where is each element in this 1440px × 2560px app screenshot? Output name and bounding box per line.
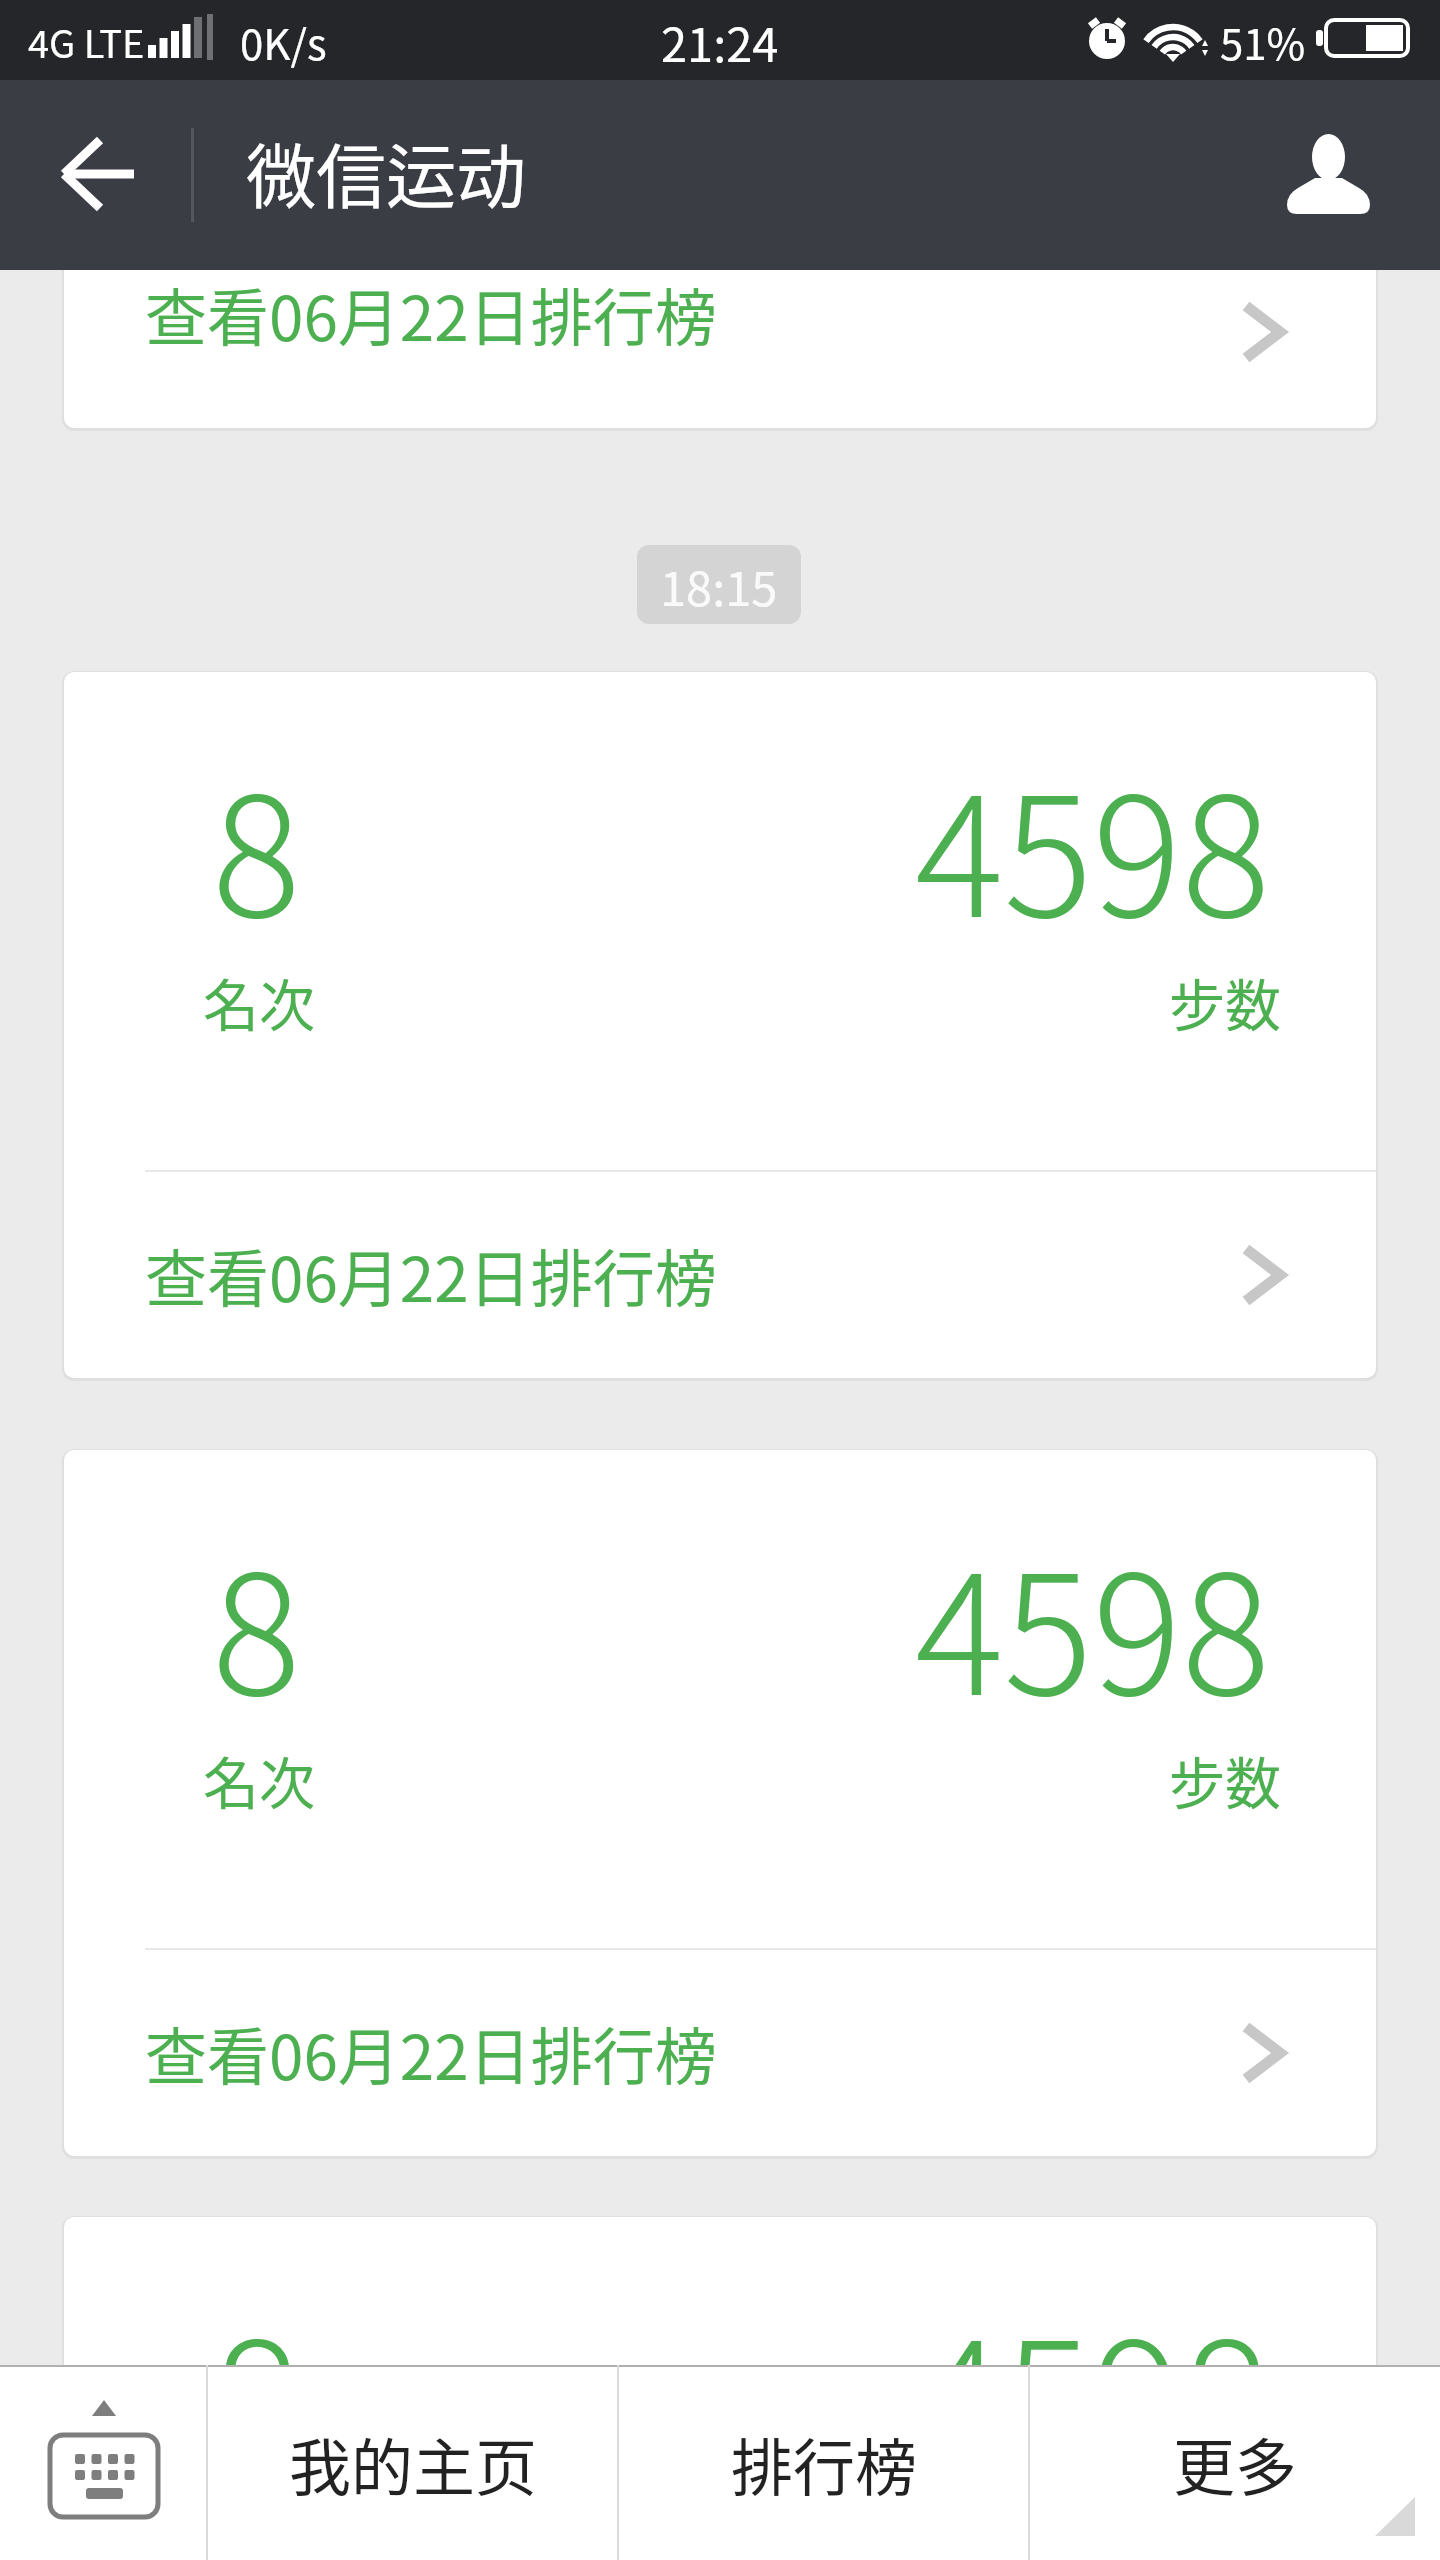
staticText: 0K/s bbox=[240, 11, 327, 72]
staticText: 51% bbox=[1220, 11, 1306, 72]
staticText: 更多 bbox=[1173, 2419, 1298, 2509]
staticText: 名次 bbox=[203, 1739, 315, 1820]
button[interactable] bbox=[40, 140, 160, 220]
button[interactable]: 查看06月22日排行榜 bbox=[64, 1950, 1376, 2156]
staticText: 名次 bbox=[203, 2506, 315, 2560]
staticText: 4598 bbox=[915, 2269, 1271, 2509]
staticText: 8 bbox=[212, 2269, 301, 2509]
staticText: 查看06月22日排行榜 bbox=[145, 270, 717, 359]
staticText: 8 bbox=[212, 724, 301, 964]
button[interactable] bbox=[0, 2365, 206, 2560]
staticText: 查看06月22日排行榜 bbox=[145, 2008, 717, 2098]
button[interactable]: 查看06月22日排行榜 bbox=[64, 270, 1376, 393]
button[interactable]: 排行榜 bbox=[619, 2365, 1028, 2560]
staticText: 8 bbox=[212, 1502, 301, 1742]
staticText: 步数 bbox=[1169, 1739, 1281, 1820]
staticText: 微信运动 bbox=[246, 122, 526, 223]
button[interactable]: 更多 bbox=[1030, 2365, 1440, 2560]
staticText: 4598 bbox=[915, 724, 1271, 964]
staticText: 名次 bbox=[203, 961, 315, 1042]
staticText: 21:24 bbox=[661, 7, 779, 75]
staticText: 我的主页 bbox=[289, 2419, 538, 2509]
button[interactable]: 查看06月22日排行榜 bbox=[64, 1172, 1376, 1378]
staticText: 查看06月22日排行榜 bbox=[145, 1230, 717, 1320]
staticText: 4598 bbox=[915, 1502, 1271, 1742]
staticText: 排行榜 bbox=[731, 2419, 918, 2509]
staticText: 4G LTE bbox=[28, 14, 145, 69]
staticText: 步数 bbox=[1169, 961, 1281, 1042]
button[interactable] bbox=[1268, 126, 1388, 226]
staticText: 18:15 bbox=[660, 551, 778, 619]
button[interactable]: 我的主页 bbox=[208, 2365, 617, 2560]
